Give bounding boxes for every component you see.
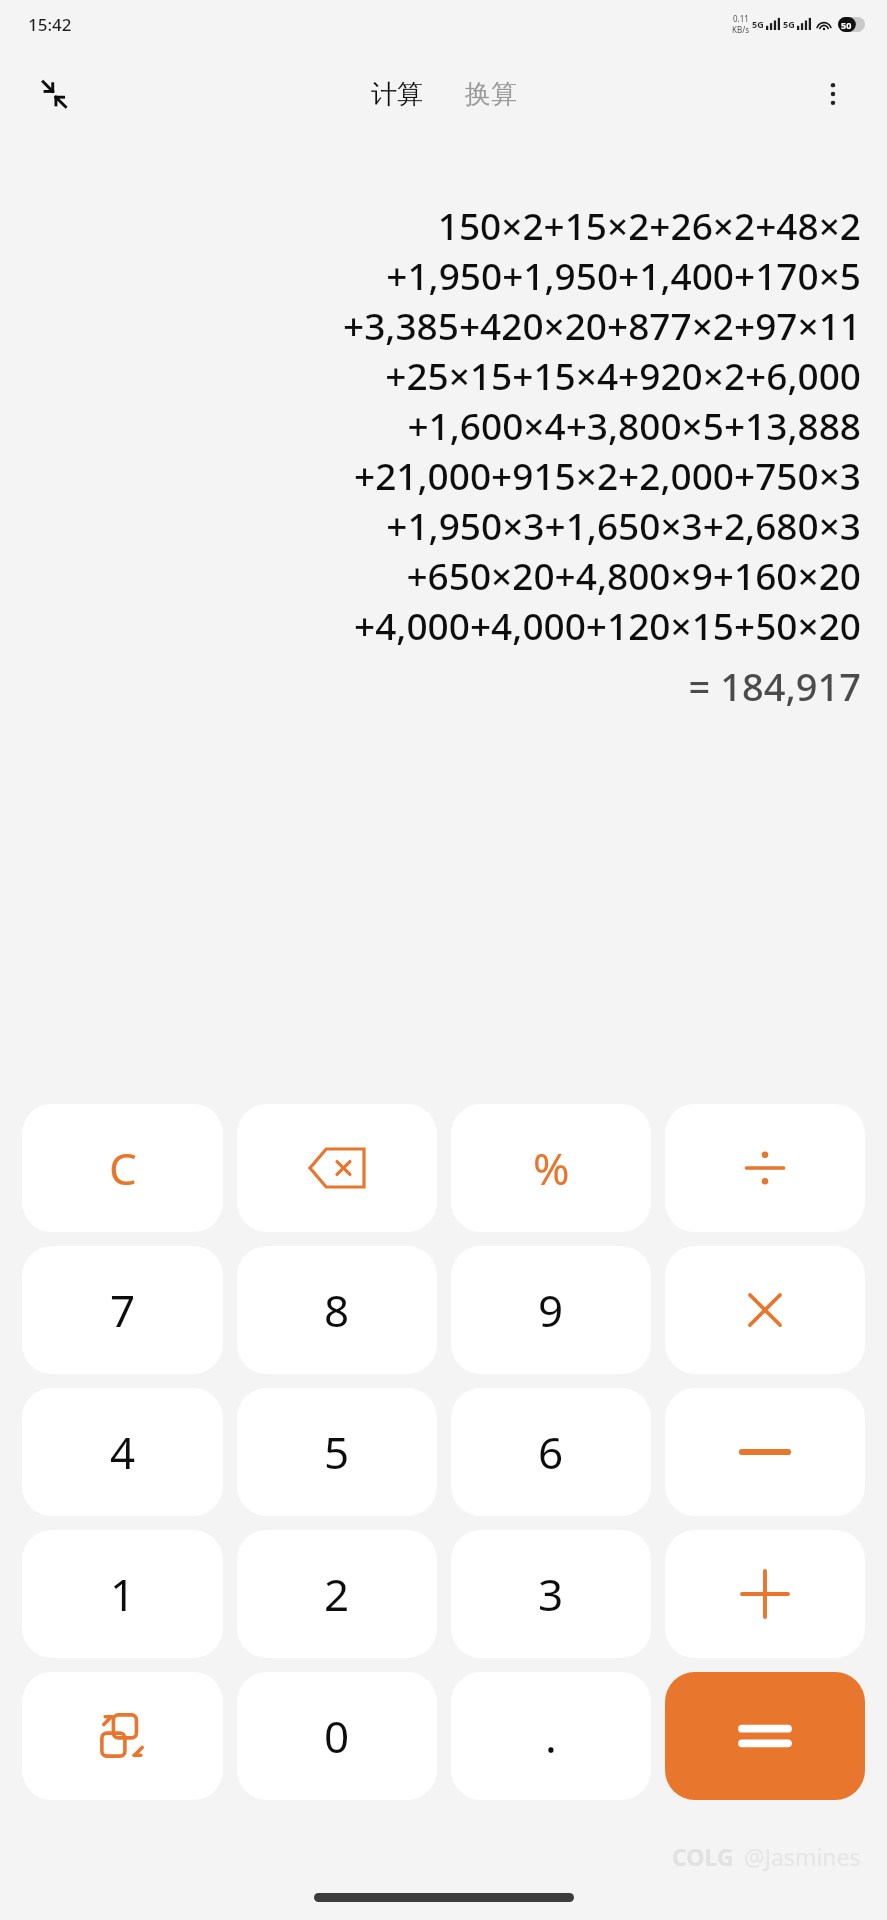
- button[interactable]: [665, 1246, 865, 1374]
- staticText: 2: [324, 1564, 350, 1624]
- staticText: 6: [538, 1422, 564, 1482]
- staticText: @Jasmines: [744, 1841, 861, 1872]
- staticText: .: [545, 1706, 557, 1766]
- button[interactable]: 2: [237, 1530, 437, 1658]
- staticText: 计算: [371, 78, 423, 111]
- button[interactable]: Backspace: [237, 1104, 437, 1232]
- staticText: +21,000+915×2+2,000+750×3: [26, 450, 861, 500]
- button[interactable]: 7: [22, 1246, 223, 1374]
- button[interactable]: 6: [451, 1388, 651, 1516]
- staticText: COLG: [672, 1841, 734, 1872]
- staticText: +1,600×4+3,800×5+13,888: [26, 400, 861, 450]
- staticText: KB/s: [732, 24, 749, 35]
- button[interactable]: %: [451, 1104, 651, 1232]
- staticText: = 184,917: [26, 660, 861, 712]
- button[interactable]: 9: [451, 1246, 651, 1374]
- staticText: 3: [538, 1564, 564, 1624]
- staticText: 7: [110, 1280, 136, 1340]
- staticText: +1,950+1,950+1,400+170×5: [26, 250, 861, 300]
- button[interactable]: 4: [22, 1388, 223, 1516]
- staticText: 5G: [752, 18, 764, 30]
- staticText: 4: [110, 1422, 136, 1482]
- button[interactable]: 0: [237, 1672, 437, 1800]
- button[interactable]: .: [451, 1672, 651, 1800]
- button[interactable]: [665, 1530, 865, 1658]
- staticText: C: [109, 1138, 137, 1198]
- button[interactable]: 8: [237, 1246, 437, 1374]
- staticText: +4,000+4,000+120×15+50×20: [26, 600, 861, 650]
- button[interactable]: [665, 1388, 865, 1516]
- button[interactable]: Collapse: [26, 66, 82, 122]
- button[interactable]: More options: [805, 66, 861, 122]
- button[interactable]: 5: [237, 1388, 437, 1516]
- staticText: 5: [324, 1422, 350, 1482]
- staticText: 5G: [783, 18, 795, 30]
- staticText: %: [533, 1138, 570, 1198]
- staticText: 15:42: [28, 13, 72, 36]
- button[interactable]: 计算: [361, 72, 433, 117]
- staticText: 150×2+15×2+26×2+48×2: [26, 200, 861, 250]
- button[interactable]: [665, 1672, 865, 1800]
- staticText: +25×15+15×4+920×2+6,000: [26, 350, 861, 400]
- button[interactable]: Convert units: [22, 1672, 223, 1800]
- staticText: 换算: [465, 78, 517, 111]
- staticText: 50: [841, 19, 852, 31]
- button[interactable]: C: [22, 1104, 223, 1232]
- button[interactable]: [665, 1104, 865, 1232]
- staticText: 0.11: [733, 13, 749, 24]
- staticText: 9: [538, 1280, 564, 1340]
- staticText: +650×20+4,800×9+160×20: [26, 550, 861, 600]
- staticText: +1,950×3+1,650×3+2,680×3: [26, 500, 861, 550]
- staticText: 8: [324, 1280, 350, 1340]
- staticText: 1: [110, 1564, 136, 1624]
- button[interactable]: 换算: [455, 72, 527, 117]
- staticText: 0: [324, 1706, 350, 1766]
- staticText: +3,385+420×20+877×2+97×11: [26, 300, 861, 350]
- button[interactable]: 3: [451, 1530, 651, 1658]
- button[interactable]: 1: [22, 1530, 223, 1658]
